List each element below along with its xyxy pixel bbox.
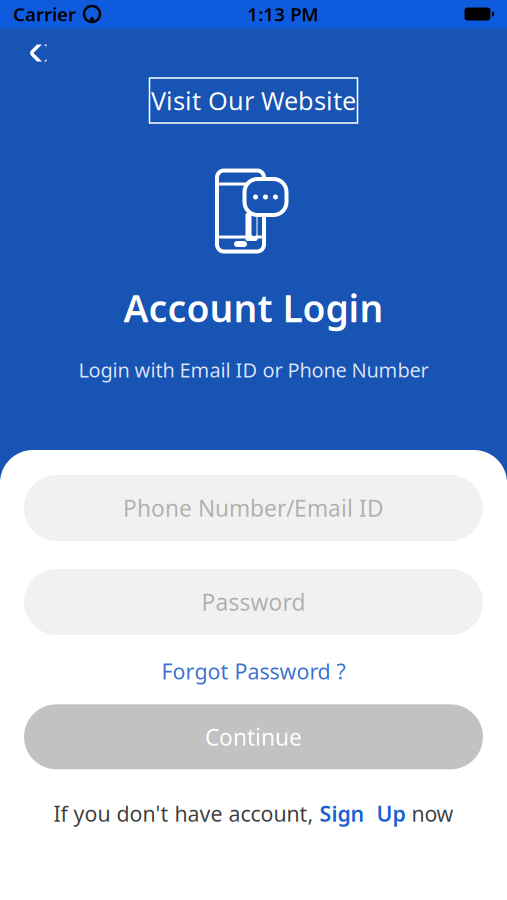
button[interactable]: Forgot Password ? bbox=[145, 649, 361, 693]
button[interactable]: If you don't have account, bbox=[53, 793, 453, 834]
staticText: now bbox=[405, 799, 453, 828]
staticText: Forgot Password ? bbox=[161, 657, 345, 685]
staticText: Carrier bbox=[13, 2, 76, 26]
staticText: Phone Number/Email ID bbox=[123, 493, 384, 523]
staticText: Account Login bbox=[123, 283, 383, 333]
button[interactable]: Back bbox=[14, 29, 62, 77]
button[interactable]: Visit Our Website bbox=[149, 78, 357, 123]
staticText: Login with Email ID or Phone Number bbox=[78, 357, 428, 383]
button[interactable]: Password bbox=[24, 569, 483, 635]
staticText: Password bbox=[201, 587, 305, 617]
button[interactable]: Continue bbox=[24, 704, 483, 769]
staticText: If you don't have account, bbox=[53, 799, 319, 828]
staticText: 1:13 PM bbox=[247, 2, 318, 26]
staticText: Visit Our Website bbox=[151, 84, 356, 117]
staticText: Continue bbox=[205, 722, 302, 752]
staticText: Sign Up bbox=[319, 799, 405, 828]
button[interactable]: Phone Number/Email ID bbox=[24, 475, 483, 541]
